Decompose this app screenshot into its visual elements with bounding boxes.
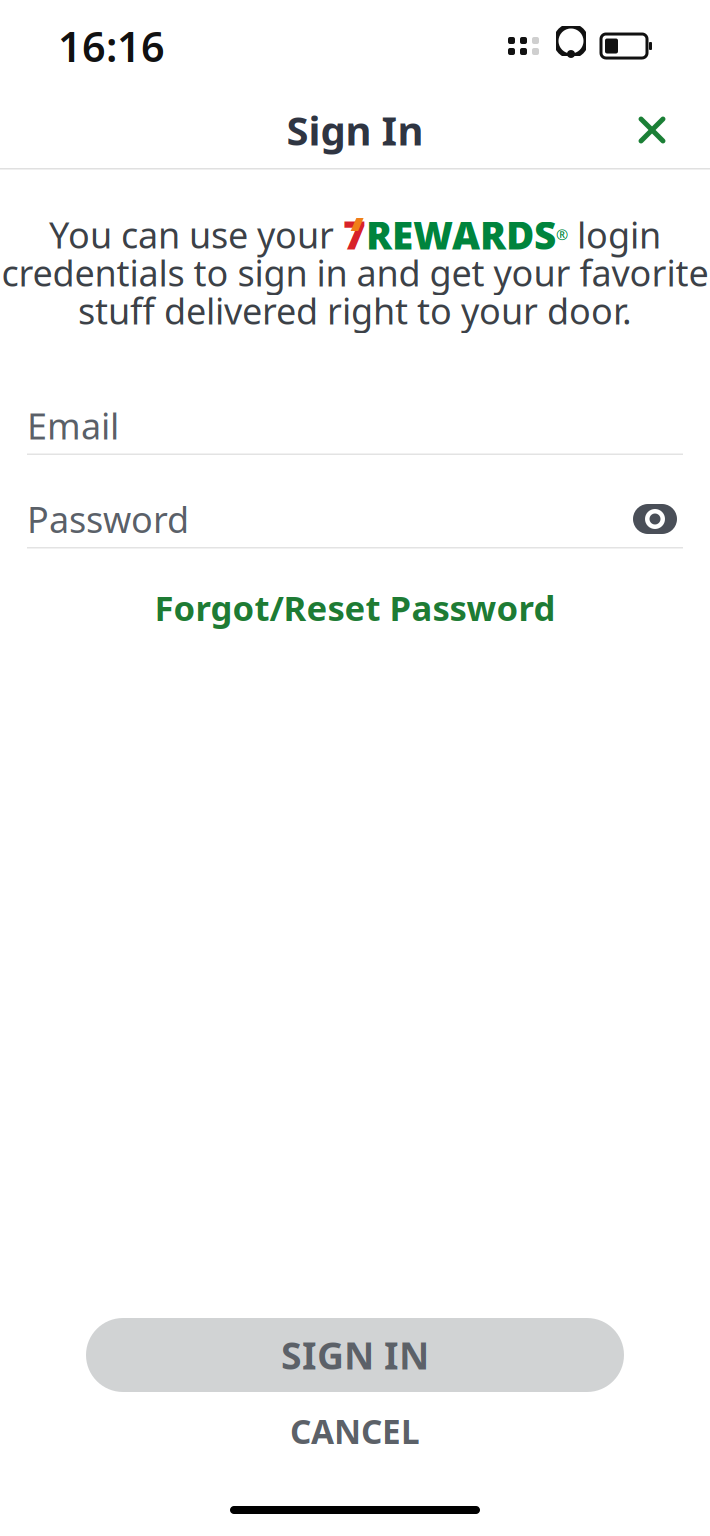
staticText: Sign In (286, 103, 423, 156)
staticText: 7 (343, 209, 366, 260)
button[interactable]: Show password (627, 491, 683, 547)
staticText: login (568, 211, 661, 258)
button[interactable]: SIGN IN (86, 1318, 624, 1392)
staticText: Email (27, 402, 119, 449)
staticText: 16:16 (58, 19, 165, 73)
staticText: Password (27, 495, 189, 543)
button[interactable]: Forgot/Reset Password (134, 570, 575, 644)
staticText: 7 (343, 199, 366, 250)
staticText: REWARDS (366, 209, 556, 260)
staticText: You can use your (49, 211, 343, 258)
staticText: ® (556, 225, 568, 244)
staticText: stuff delivered right to your door. (78, 287, 632, 334)
button[interactable]: Close (624, 102, 680, 158)
staticText: SIGN IN (281, 1330, 429, 1380)
staticText: credentials to sign in and get your favo… (1, 249, 708, 296)
button[interactable]: CANCEL (86, 1402, 624, 1460)
staticText: CANCEL (290, 1409, 420, 1453)
staticText: Forgot/Reset Password (154, 584, 555, 630)
